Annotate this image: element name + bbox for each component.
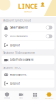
- staticText: Impostazioni: [45, 97, 53, 99]
- button[interactable]: Salva Password: [2, 23, 54, 32]
- staticText: Riconoscimento biometrico: [10, 35, 28, 37]
- staticText: Logout: [10, 82, 20, 85]
- staticText: Lista Videocamere: [10, 58, 34, 62]
- staticText: Sezione Videocamere: [3, 51, 35, 55]
- staticText: Account LinceCloud: [3, 19, 31, 22]
- button[interactable]: Associazione: [2, 70, 54, 79]
- button[interactable]: Lista Videocamere: [2, 56, 54, 64]
- button[interactable]: Video: [14, 91, 28, 99]
- staticText: Associazione: [10, 73, 27, 76]
- button[interactable]: Profilo: [39, 1, 46, 8]
- button[interactable]: Scenari: [28, 91, 42, 99]
- button[interactable]: Centrale: [0, 91, 14, 99]
- button[interactable]: Logout: [2, 41, 54, 49]
- staticText: SICUREZZA: [24, 11, 32, 13]
- staticText: Sezioni TVCC: [3, 66, 21, 69]
- staticText: LINCE: [18, 2, 38, 11]
- button[interactable]: Logout: [2, 79, 54, 88]
- staticText: Logout: [10, 43, 20, 47]
- button[interactable]: Riconoscimento biometrico: [2, 32, 54, 40]
- staticText: Video: [19, 97, 23, 99]
- staticText: Centrale: [4, 97, 10, 99]
- staticText: Salva Password: [10, 26, 28, 29]
- button[interactable]: Impostazioni: [42, 91, 56, 99]
